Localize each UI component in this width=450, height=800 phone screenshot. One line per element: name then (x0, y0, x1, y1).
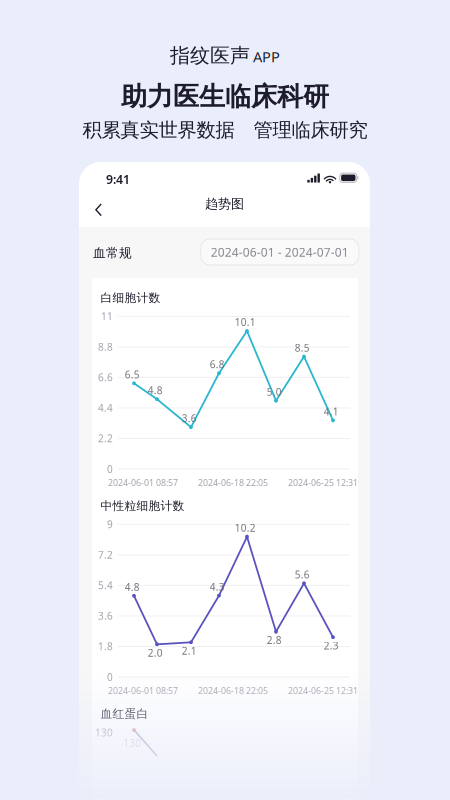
staticText: 3.6 (182, 412, 197, 425)
staticText: 8.5 (295, 341, 310, 355)
staticText: 6.5 (125, 368, 140, 381)
staticText: 1.8 (98, 640, 113, 653)
staticText: 4.4 (98, 401, 113, 415)
staticText: 9:41 (106, 171, 130, 188)
staticText: APP (253, 47, 280, 67)
staticText: 2024-06-25 12:31 (288, 476, 358, 488)
staticText: 7.2 (98, 548, 113, 562)
staticText: 趋势图 (205, 196, 244, 212)
staticText: 8.8 (98, 340, 113, 354)
staticText: 2024-06-25 12:31 (288, 684, 358, 696)
staticText: 0 (107, 462, 113, 476)
staticText: 9 (107, 518, 113, 531)
staticText: 11 (101, 310, 113, 323)
staticText: 血常规 (93, 245, 132, 261)
staticText: 白细胞计数 (100, 290, 160, 305)
staticText: 4.8 (125, 580, 140, 594)
staticText: 10.2 (235, 521, 256, 535)
staticText: 血红蛋白 (100, 706, 148, 721)
staticText: 6.8 (210, 358, 225, 371)
staticText: 5.6 (295, 568, 310, 581)
staticText: 中性粒细胞计数 (100, 498, 184, 513)
staticText: 积累真实世界数据 管理临床研究 (82, 118, 367, 142)
staticText: 0 (107, 670, 113, 684)
staticText: 5.0 (267, 385, 282, 399)
staticText: 2.8 (267, 633, 282, 647)
staticText: 2024-06-01 - 2024-07-01 (211, 244, 349, 260)
staticText: 2.2 (98, 432, 113, 445)
staticText: 指纹医声 (170, 43, 250, 68)
staticText: 2.0 (148, 646, 163, 660)
staticText: 4.8 (148, 384, 163, 397)
staticText: 4.1 (324, 405, 339, 418)
staticText: 2.3 (324, 639, 339, 652)
staticText: 130 (123, 736, 141, 750)
staticText: 2024-06-18 22:05 (198, 684, 268, 696)
staticText: 4.3 (210, 580, 225, 594)
staticText: 助力医生临床科研 (121, 80, 329, 113)
staticText: 6.6 (98, 371, 113, 384)
staticText: 5.4 (98, 579, 113, 592)
staticText: 2.1 (182, 644, 197, 658)
staticText: 2024-06-01 08:57 (108, 476, 178, 488)
button[interactable]: Back (88, 197, 109, 223)
staticText: 130 (95, 726, 113, 739)
staticText: 2024-06-18 22:05 (198, 476, 268, 488)
staticText: 2024-06-01 08:57 (108, 684, 178, 696)
staticText: 3.6 (98, 609, 113, 623)
staticText: 10.1 (235, 315, 256, 329)
button[interactable]: 2024-06-01 - 2024-07-01 (201, 239, 359, 265)
